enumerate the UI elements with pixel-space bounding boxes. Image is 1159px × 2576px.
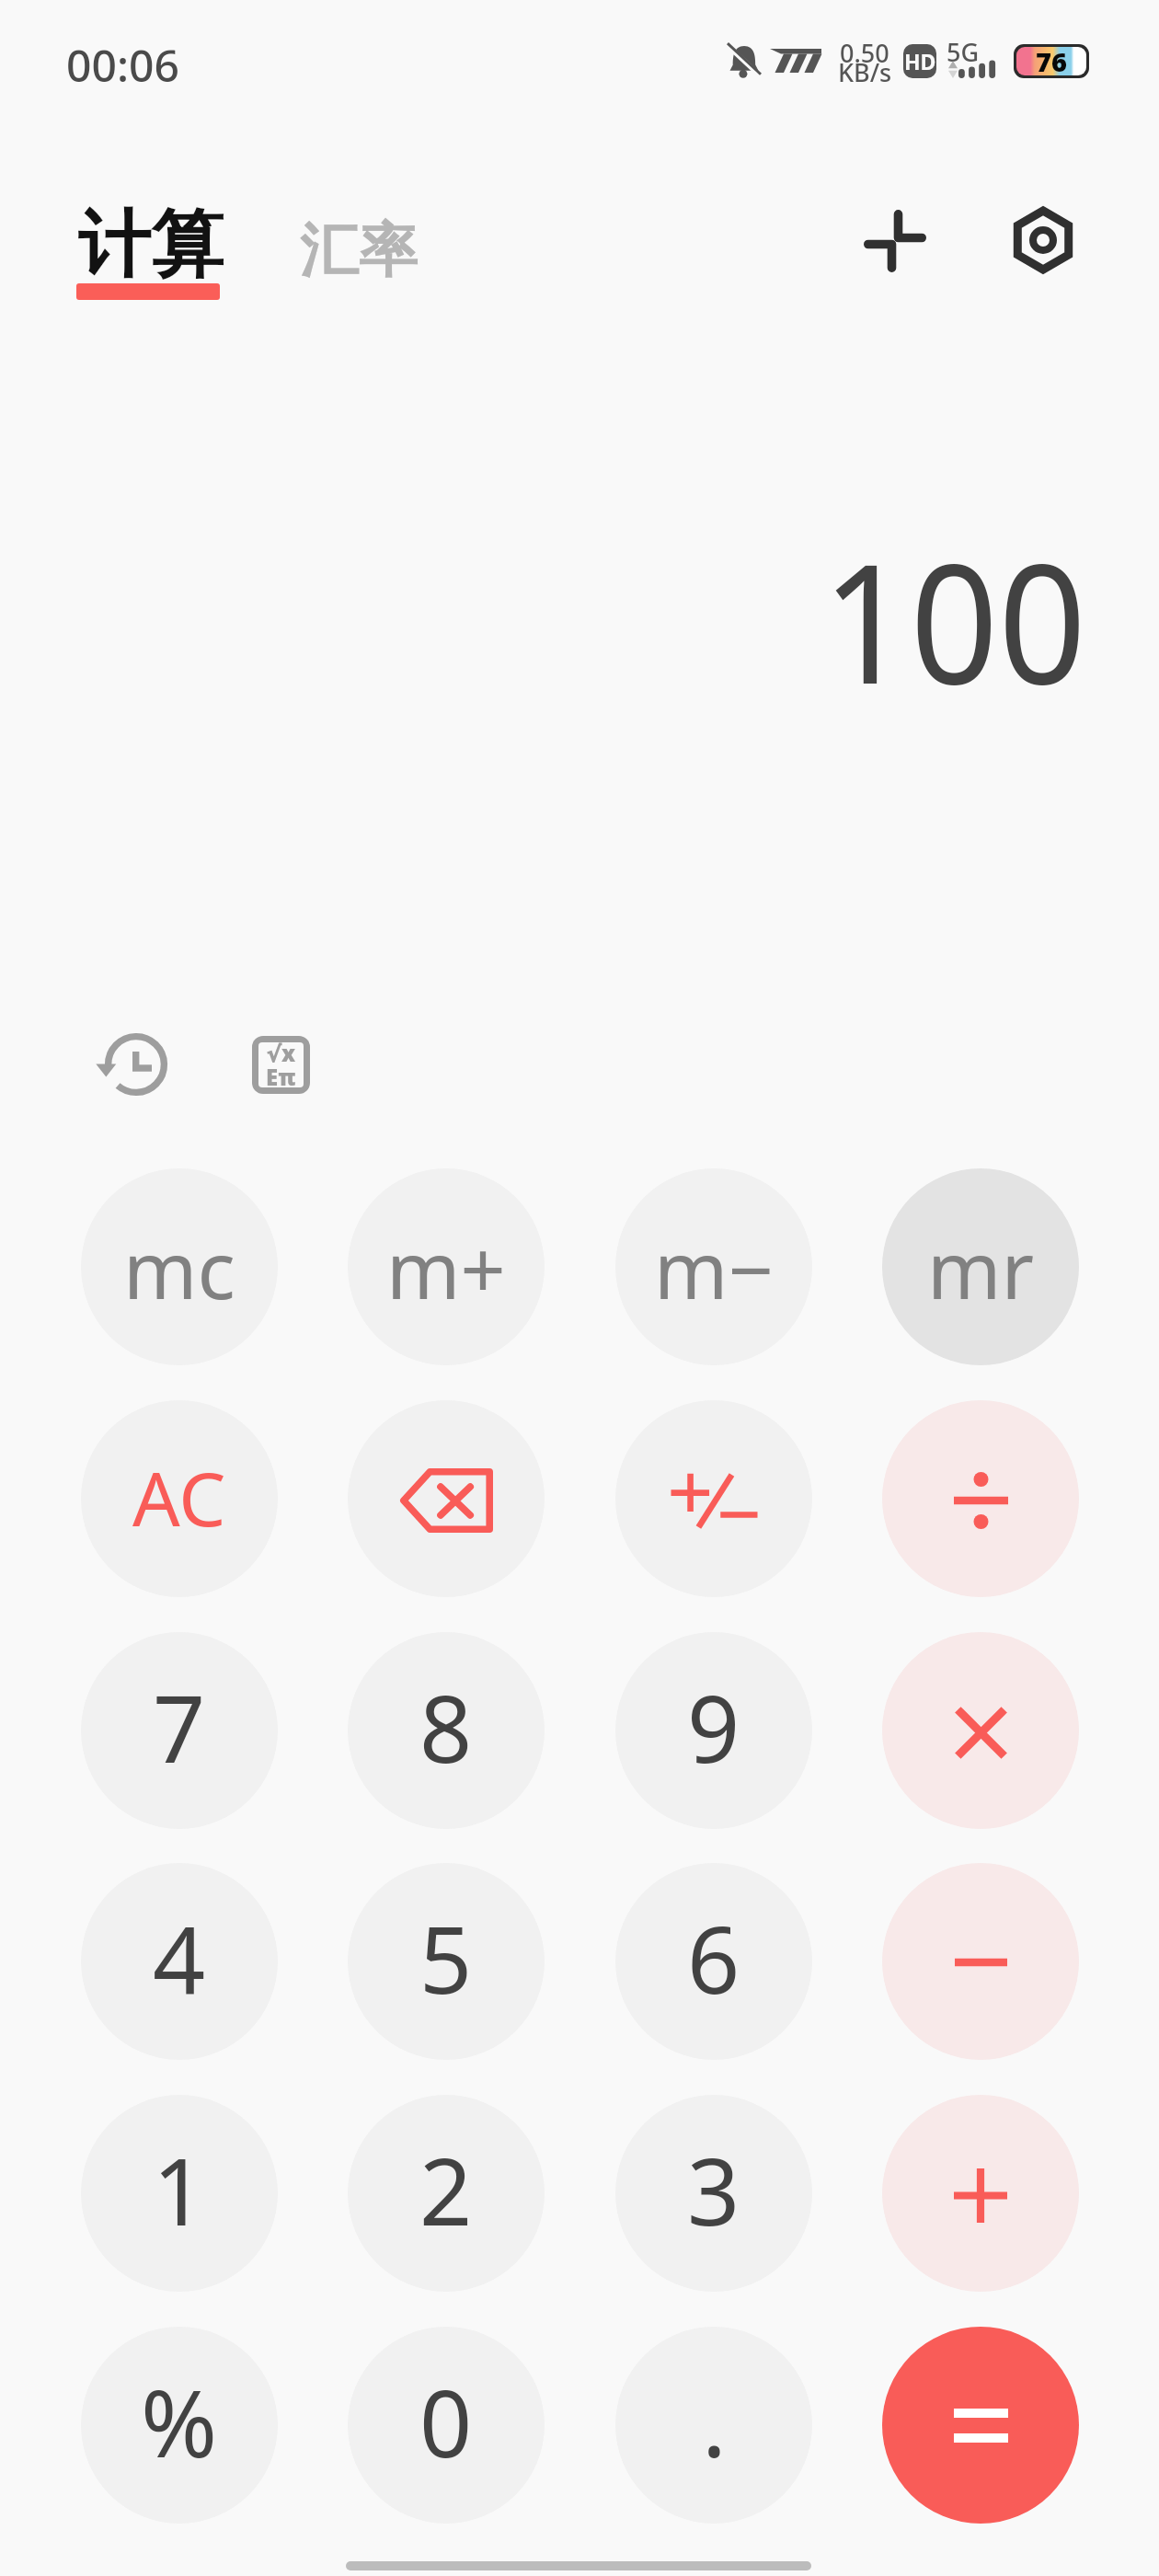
staticText: m+ <box>386 1214 506 1322</box>
staticText: 100 <box>821 508 1086 732</box>
button[interactable]: Equals <box>882 2327 1079 2524</box>
staticText: 8 <box>419 1664 473 1789</box>
button[interactable]: 0 <box>348 2327 545 2524</box>
staticText: . <box>702 2359 727 2484</box>
button[interactable]: . <box>615 2327 812 2524</box>
staticText: mc <box>123 1214 235 1322</box>
button[interactable]: m+ <box>348 1168 545 1365</box>
staticText: HD <box>904 47 936 75</box>
staticText: √x <box>267 1042 296 1068</box>
button[interactable]: Multiply <box>882 1632 1079 1829</box>
staticText: 2 <box>419 2127 473 2252</box>
button[interactable]: 5 <box>348 1863 545 2060</box>
button[interactable]: 1 <box>81 2095 278 2292</box>
button[interactable]: Scientific mode <box>235 1018 327 1110</box>
button[interactable]: Settings <box>995 192 1091 288</box>
button[interactable]: AC <box>81 1400 278 1597</box>
button[interactable]: Minus <box>882 1863 1079 2060</box>
staticText: 0.50 <box>840 36 889 70</box>
staticText: 6 <box>687 1895 740 2020</box>
button[interactable]: Backspace <box>348 1400 545 1597</box>
staticText: 7 <box>153 1664 206 1789</box>
staticText: 00:06 <box>66 35 179 95</box>
button[interactable]: 2 <box>348 2095 545 2292</box>
button[interactable]: History <box>90 1018 182 1110</box>
button[interactable]: Unit converter <box>847 193 943 289</box>
button[interactable]: Divide <box>882 1400 1079 1597</box>
button[interactable]: Plus <box>882 2095 1079 2292</box>
button[interactable]: 4 <box>81 1863 278 2060</box>
button[interactable]: 3 <box>615 2095 812 2292</box>
button[interactable]: % <box>81 2327 278 2524</box>
button[interactable]: Plus minus <box>615 1400 812 1597</box>
button[interactable]: 6 <box>615 1863 812 2060</box>
staticText: AC <box>132 1446 226 1547</box>
staticText: KB/s <box>838 55 892 89</box>
staticText: 4 <box>153 1895 206 2020</box>
button[interactable]: mr <box>882 1168 1079 1365</box>
staticText: 5G <box>947 35 980 69</box>
button[interactable]: 8 <box>348 1632 545 1829</box>
staticText: 0 <box>419 2359 473 2484</box>
button[interactable]: 计算 <box>64 184 232 318</box>
staticText: 76 <box>1036 43 1067 77</box>
staticText: 3 <box>687 2127 740 2252</box>
staticText: 5 <box>419 1895 473 2020</box>
staticText: 9 <box>687 1664 740 1789</box>
staticText: mr <box>927 1214 1034 1322</box>
staticText: % <box>141 2359 218 2484</box>
button[interactable]: 9 <box>615 1632 812 1829</box>
button[interactable]: mc <box>81 1168 278 1365</box>
staticText: 汇率 <box>300 213 418 288</box>
button[interactable]: 汇率 <box>287 204 430 296</box>
staticText: 计算 <box>78 200 224 292</box>
staticText: 1 <box>153 2127 206 2252</box>
staticText: m− <box>654 1214 774 1322</box>
button[interactable]: 7 <box>81 1632 278 1829</box>
staticText: Eπ <box>266 1062 296 1087</box>
button[interactable]: m− <box>615 1168 812 1365</box>
